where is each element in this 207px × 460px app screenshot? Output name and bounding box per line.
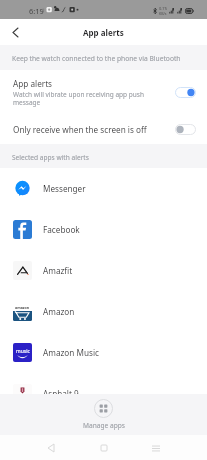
button[interactable]: Messenger [0,168,207,209]
staticText: 0.75 [159,6,167,11]
button[interactable]: Back [41,438,61,458]
button[interactable]: Recent apps [146,438,166,458]
button[interactable]: Manage apps [0,394,207,435]
button[interactable]: amazon [0,291,207,332]
button[interactable]: Facebook [0,209,207,250]
staticText: Asphalt 9 [43,388,79,394]
staticText: App alerts [83,27,124,38]
button[interactable] [175,87,196,98]
button[interactable]: App alerts [0,70,207,114]
button[interactable] [175,124,196,135]
staticText: 6:19 [29,6,44,16]
staticText: amazon [15,305,30,310]
button[interactable]: music [0,332,207,373]
button[interactable]: Only receive when the screen is off [0,114,207,144]
button[interactable]: Amazfit [0,250,207,291]
staticText: Messenger [43,183,86,194]
staticText: Amazon [43,306,75,317]
staticText: Amazon Music [43,347,99,358]
staticText: Keep the watch connected to the phone vi… [12,54,181,63]
staticText: Selected apps with alerts [12,153,89,162]
staticText: KB/s [159,11,167,16]
staticText: Facebook [43,224,80,235]
button[interactable]: Home [94,438,114,458]
staticText: music [16,348,30,355]
staticText: Only receive when the screen is off [13,124,147,135]
staticText: App alerts [13,78,53,89]
staticText: Watch will vibrate upon receiving app pu… [13,90,144,107]
staticText: Manage apps [83,421,125,430]
button[interactable]: Back [0,19,31,45]
staticText: Amazfit [43,265,73,276]
button[interactable]: Asphalt 9 [0,373,207,394]
